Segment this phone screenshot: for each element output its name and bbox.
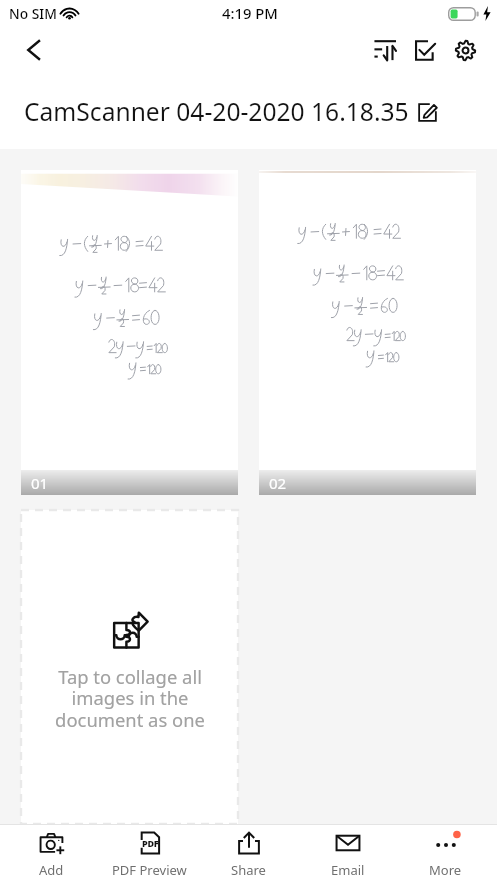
- button[interactable]: Add: [4, 824, 99, 884]
- button[interactable]: Tap to collage all images in the documen…: [21, 510, 238, 824]
- button[interactable]: Back: [16, 32, 52, 68]
- staticText: Add: [39, 861, 64, 879]
- staticText: More: [429, 861, 462, 879]
- staticText: 02: [269, 473, 287, 493]
- button[interactable]: Rename: [409, 94, 445, 130]
- staticText: Tap to collage all images in the documen…: [54, 664, 206, 733]
- button[interactable]: Share: [201, 824, 296, 884]
- button[interactable]: Select: [405, 30, 445, 70]
- button[interactable]: 01: [21, 170, 238, 495]
- staticText: 01: [31, 473, 49, 493]
- button[interactable]: PDF: [102, 824, 197, 884]
- button[interactable]: More: [398, 824, 493, 884]
- staticText: PDF: [142, 837, 159, 849]
- button[interactable]: Settings: [445, 30, 485, 70]
- button[interactable]: Sort: [365, 30, 405, 70]
- staticText: Share: [231, 861, 266, 879]
- staticText: CamScanner 04-20-2020 16.18.35: [24, 95, 409, 129]
- staticText: 4:19 PM: [222, 3, 278, 23]
- staticText: Email: [331, 861, 365, 879]
- staticText: PDF Preview: [112, 861, 187, 879]
- button[interactable]: 02: [259, 170, 476, 495]
- button[interactable]: Email: [300, 824, 395, 884]
- staticText: No SIM: [9, 4, 57, 23]
